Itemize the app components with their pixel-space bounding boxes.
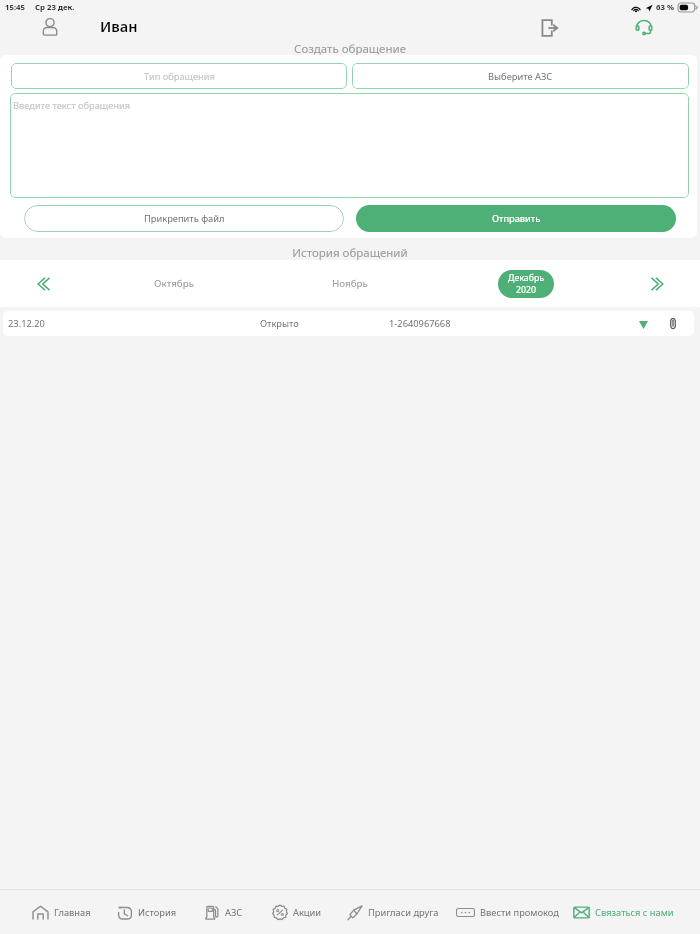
staticText: 23.12.20: [8, 317, 45, 330]
staticText: Октябрь: [154, 277, 195, 290]
button[interactable]: Ноябрь: [312, 260, 388, 307]
button[interactable]: Октябрь: [134, 260, 214, 307]
button[interactable]: История: [117, 905, 177, 920]
button[interactable]: Пригласи друга: [347, 905, 439, 920]
staticText: Связаться с нами: [595, 906, 674, 919]
staticText: Открыто: [260, 317, 299, 330]
staticText: Акции: [293, 906, 322, 919]
staticText: 2020: [516, 284, 537, 296]
button[interactable]: Главная: [32, 905, 91, 920]
staticText: Главная: [54, 906, 91, 919]
staticText: Ввести промокод: [480, 906, 559, 919]
staticText: 15:45: [5, 2, 26, 13]
button[interactable]: Введите текст обращения: [10, 93, 689, 198]
staticText: 1-2640967668: [389, 317, 451, 330]
button[interactable]: АЗС: [205, 905, 243, 920]
button[interactable]: Выход: [535, 13, 564, 42]
staticText: Ср 23 дек.: [35, 2, 75, 13]
staticText: История: [138, 906, 177, 919]
button[interactable]: Ввести промокод: [456, 905, 559, 920]
staticText: Пригласи друга: [368, 906, 439, 919]
button[interactable]: Прикрепить файл: [24, 205, 344, 232]
button[interactable]: Декабрь: [498, 270, 554, 298]
staticText: Отправить: [492, 212, 541, 225]
staticText: Введите текст обращения: [13, 99, 131, 112]
staticText: Выберите АЗС: [488, 70, 553, 83]
button[interactable]: 23.12.20: [3, 311, 694, 336]
staticText: Декабрь: [508, 272, 545, 284]
button[interactable]: Профиль: [36, 13, 64, 41]
staticText: АЗС: [225, 906, 243, 919]
button[interactable]: Отправить: [356, 205, 676, 232]
staticText: Тип обращения: [144, 70, 215, 83]
staticText: 63 %: [656, 2, 674, 13]
button[interactable]: Тип обращения: [11, 63, 347, 89]
button[interactable]: Предыдущие месяцы: [22, 260, 64, 307]
staticText: Ноябрь: [332, 277, 368, 290]
staticText: Иван: [100, 16, 138, 36]
staticText: История обращений: [0, 245, 700, 261]
button[interactable]: Следующие месяцы: [637, 260, 679, 307]
button[interactable]: Поддержка: [630, 13, 658, 41]
button[interactable]: Акции: [272, 905, 322, 920]
button[interactable]: Выберите АЗС: [352, 63, 689, 89]
staticText: Прикрепить файл: [144, 212, 225, 225]
button[interactable]: Связаться с нами: [573, 905, 674, 920]
staticText: Создать обращение: [0, 41, 700, 57]
